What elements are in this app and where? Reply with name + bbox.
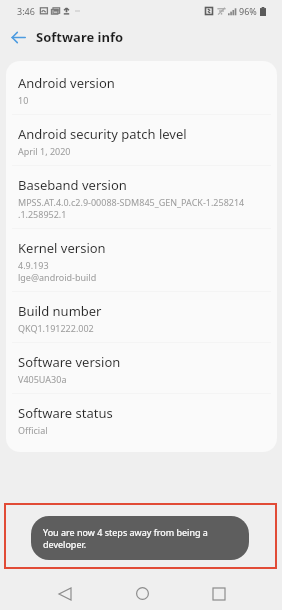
staticText: lge@android-build xyxy=(18,271,97,283)
staticText: 4.9.193 xyxy=(18,259,49,271)
button[interactable]: Back xyxy=(5,24,31,50)
button[interactable]: Back xyxy=(47,577,83,610)
staticText: .1.258952.1 xyxy=(18,208,67,220)
staticText: V405UA30a xyxy=(18,373,67,385)
staticText: Kernel version xyxy=(18,239,106,257)
button[interactable]: Android security patch level xyxy=(6,115,277,165)
button[interactable]: Home xyxy=(124,577,160,610)
staticText: You are now 4 steps away from being a de… xyxy=(43,526,237,551)
staticText: QKQ1.191222.002 xyxy=(18,322,94,334)
button[interactable]: Kernel version xyxy=(6,229,277,291)
button[interactable]: Baseband version xyxy=(6,166,277,228)
button[interactable]: Software version xyxy=(6,343,277,393)
button[interactable]: Software status xyxy=(6,394,277,444)
staticText: Android security patch level xyxy=(18,125,187,143)
staticText: MPSS.AT.4.0.c2.9-00088-SDM845_GEN_PACK-1… xyxy=(18,196,245,208)
staticText: 3:46 xyxy=(17,5,35,17)
staticText: Software status xyxy=(18,404,113,422)
staticText: 96% xyxy=(239,5,257,17)
staticText: Android version xyxy=(18,74,115,92)
staticText: Software version xyxy=(18,353,121,371)
staticText: Software info xyxy=(36,28,124,46)
button[interactable]: Android version xyxy=(6,64,277,114)
staticText: Baseband version xyxy=(18,176,127,194)
staticText: 10 xyxy=(18,94,29,106)
staticText: Official xyxy=(18,424,48,436)
staticText: Build number xyxy=(18,302,102,320)
staticText: April 1, 2020 xyxy=(18,145,71,157)
button[interactable]: Build number xyxy=(6,292,277,342)
button[interactable]: Recent apps xyxy=(201,577,237,610)
